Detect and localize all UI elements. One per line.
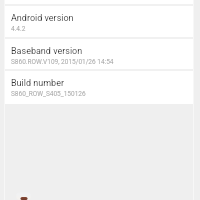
staticText: 4.4.2	[11, 25, 26, 33]
staticText: S860_ROW_S405_150126	[11, 90, 86, 98]
staticText: S860.ROW.V109, 2015/01/26 14:54	[11, 58, 114, 66]
button[interactable]: Baseband version	[5, 38, 193, 71]
button[interactable]: Open app	[15, 190, 31, 200]
button[interactable]: Android version	[5, 5, 193, 38]
staticText: Build number	[11, 78, 64, 89]
staticText: Baseband version	[11, 46, 83, 57]
button[interactable]: Build number	[5, 70, 193, 103]
staticText: Android version	[11, 13, 74, 24]
